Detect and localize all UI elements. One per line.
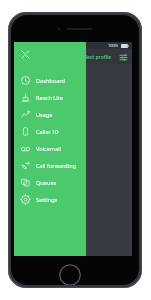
- staticText: Caller ID: [36, 128, 59, 136]
- staticText: Dashboard: [36, 77, 65, 85]
- button[interactable]: Call forwarding: [14, 157, 86, 174]
- button[interactable]: Close menu: [20, 49, 31, 60]
- button[interactable]: Queues: [14, 174, 86, 191]
- button[interactable]: Voicemail: [14, 140, 86, 157]
- staticText: Usage: [36, 111, 53, 119]
- staticText: Voicemail: [36, 145, 62, 153]
- staticText: Select profile: [80, 54, 112, 61]
- staticText: Reach Lite: [36, 94, 63, 102]
- button[interactable]: Usage: [14, 106, 86, 123]
- button[interactable]: Reach Lite: [14, 89, 86, 106]
- button[interactable]: Select profile: [78, 53, 114, 62]
- button[interactable]: Filter: [118, 52, 128, 62]
- staticText: Settings: [36, 196, 58, 204]
- button[interactable]: Caller ID: [14, 123, 86, 140]
- button[interactable]: Settings: [14, 191, 86, 208]
- staticText: 100%: [108, 43, 119, 48]
- button[interactable]: Dashboard: [14, 72, 86, 89]
- staticText: Queues: [36, 179, 57, 187]
- staticText: Call forwarding: [36, 162, 77, 170]
- button[interactable]: Home: [59, 264, 81, 285]
